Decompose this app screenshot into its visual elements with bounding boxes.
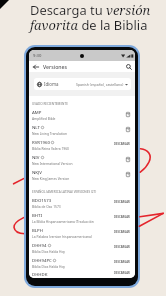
staticText: Biblia Reina Valera 1960 [32,146,69,150]
staticText: DESCARGAR [114,260,130,264]
staticText: New International Version [32,161,73,165]
staticText: La Biblia Hispanoamericana (Traducción I… [32,219,110,223]
button[interactable]: DESCARGAR [112,228,132,236]
staticText: Biblia Dios Habla Hoy [32,249,66,253]
button[interactable]: AMP [29,107,135,122]
staticText: AMP [32,109,42,115]
button[interactable]: DESCARGAR [112,213,132,221]
button[interactable]: Back [31,62,40,71]
button[interactable]: BLPH [29,225,135,240]
staticText: ESPAÑOL (AMERICA LATINA) VERSIONES (27) [32,190,97,194]
staticText: DHH94 [32,242,47,248]
staticText: DESCARGAR [114,215,130,219]
button[interactable]: DESCARGAR [112,140,132,148]
staticText: BDO1573 [32,197,52,203]
staticText: NKJV [32,169,42,175]
staticText: USADO RECIENTEMENTE [32,102,68,106]
staticText: New King James Version [32,176,70,180]
staticText: Biblia de Oso 1573 [32,204,61,208]
staticText: Idioma [44,81,59,87]
button[interactable]: NKJV [29,167,135,182]
staticText: DHH94PC [32,257,52,263]
button[interactable]: DHH94PC [29,255,135,270]
staticText: DESCARGAR [114,245,130,249]
staticText: NLT [32,124,40,130]
button[interactable]: DESCARGAR [112,243,132,251]
staticText: Biblia Dios Habla Hoy [32,264,66,268]
staticText: DESCARGAR [114,271,130,275]
staticText: NIV [32,154,40,160]
staticText: La Palabra (version hispanoamericana) [32,234,92,238]
button[interactable]: Idioma [34,78,131,90]
button[interactable]: DHH94 [29,240,135,255]
staticText: BLPH [32,227,43,233]
button[interactable]: BHTI [29,210,135,225]
button[interactable]: DESCARGAR [112,269,132,277]
staticText: DESCARGAR [114,142,130,146]
button[interactable]: Search [124,62,133,71]
button[interactable]: Download [123,125,132,134]
staticText: DESCARGAR [114,230,130,234]
button[interactable]: NLT [29,122,135,137]
staticText: Amplified Bible [32,116,56,120]
button[interactable]: DHHDK [29,270,135,278]
button[interactable]: Download [123,155,132,164]
button[interactable]: RVR1960 [29,137,135,152]
staticText: BHTI [32,212,42,218]
staticText: New Living Translation [32,131,67,135]
staticText: 9:30 [33,53,42,59]
button[interactable]: BDO1573 [29,195,135,210]
button[interactable]: DESCARGAR [112,258,132,266]
button[interactable]: NIV [29,152,135,167]
button[interactable]: Download [123,110,132,119]
staticText: Versiones [43,63,68,70]
button[interactable]: DESCARGAR [112,198,132,206]
staticText: favorita de la Biblia [30,16,148,34]
staticText: Descarga tu versión [30,1,151,19]
staticText: RVR1960 [32,139,50,145]
button[interactable]: Download [123,170,132,179]
staticText: Spanish (español, castellano) [76,82,124,87]
staticText: DHHDK [32,271,48,277]
staticText: DESCARGAR [114,200,130,204]
